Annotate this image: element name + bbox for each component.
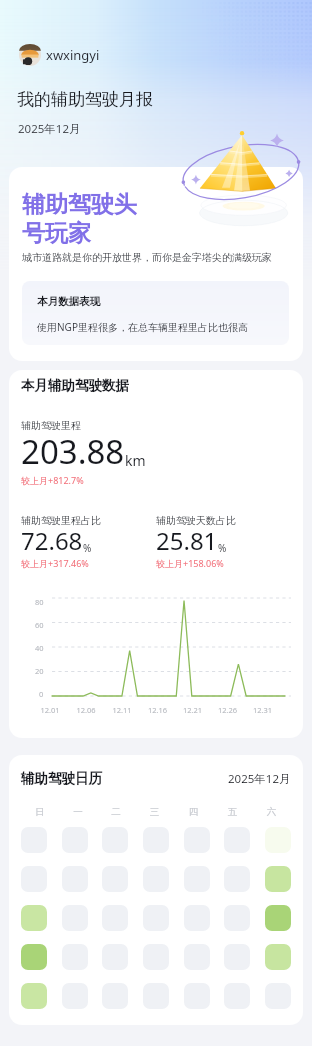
staticText: 本月辅助驾驶数据 — [21, 377, 129, 394]
button[interactable] — [143, 944, 169, 970]
staticText: 较上月+317.46% — [21, 557, 89, 569]
staticText: 辅助驾驶天数占比 — [156, 514, 236, 527]
staticText: 203.88 — [21, 429, 125, 474]
staticText: 12.31 — [245, 705, 280, 715]
staticText: 较上月+158.06% — [156, 557, 224, 569]
staticText: 0 — [39, 689, 44, 699]
staticText: % — [218, 541, 227, 555]
staticText: 二 — [97, 806, 135, 818]
button[interactable] — [184, 827, 210, 853]
button[interactable] — [62, 944, 88, 970]
button[interactable] — [224, 944, 250, 970]
staticText: 较上月+812.7% — [21, 474, 84, 486]
button[interactable] — [224, 983, 250, 1009]
button[interactable] — [265, 827, 291, 853]
button[interactable] — [62, 827, 88, 853]
button[interactable] — [143, 905, 169, 931]
button[interactable] — [102, 827, 128, 853]
staticText: 2025年12月 — [228, 771, 291, 787]
staticText: 60 — [35, 620, 44, 630]
button[interactable] — [224, 827, 250, 853]
staticText: 20 — [35, 666, 44, 676]
staticText: 本月数据表现 — [37, 295, 100, 308]
staticText: 辅助驾驶里程 — [21, 419, 81, 432]
button[interactable] — [184, 905, 210, 931]
button[interactable] — [184, 983, 210, 1009]
button[interactable] — [102, 944, 128, 970]
button[interactable] — [265, 866, 291, 892]
staticText: 40 — [35, 643, 44, 653]
staticText: km — [125, 451, 146, 470]
staticText: 三 — [135, 806, 174, 818]
button[interactable] — [62, 866, 88, 892]
button[interactable] — [102, 866, 128, 892]
button[interactable] — [224, 866, 250, 892]
button[interactable] — [224, 905, 250, 931]
staticText: 72.68 — [21, 524, 83, 557]
staticText: 12.06 — [68, 705, 104, 715]
button[interactable] — [21, 905, 47, 931]
button[interactable] — [21, 866, 47, 892]
staticText: 辅助驾驶头 号玩家 — [22, 190, 137, 247]
staticText: 12.21 — [175, 705, 210, 715]
staticText: 辅助驾驶日历 — [21, 770, 102, 787]
staticText: 25.81 — [156, 524, 218, 557]
staticText: % — [83, 541, 92, 555]
staticText: xwxingyi — [46, 46, 100, 64]
staticText: 12.11 — [104, 705, 140, 715]
button[interactable] — [62, 905, 88, 931]
staticText: 12.16 — [140, 705, 175, 715]
button[interactable] — [21, 944, 47, 970]
staticText: 四 — [174, 806, 213, 818]
button[interactable] — [143, 983, 169, 1009]
staticText: 一 — [59, 806, 97, 818]
staticText: 我的辅助驾驶月报 — [17, 89, 153, 110]
staticText: 2025年12月 — [18, 121, 81, 137]
staticText: 使用NGP里程很多，在总车辆里程里占比也很高 — [37, 320, 248, 334]
staticText: 12.26 — [210, 705, 245, 715]
button[interactable] — [21, 983, 47, 1009]
button[interactable] — [102, 983, 128, 1009]
button[interactable] — [184, 866, 210, 892]
button[interactable] — [143, 866, 169, 892]
staticText: 城市道路就是你的开放世界，而你是金字塔尖的满级玩家 — [22, 251, 272, 264]
button[interactable] — [21, 827, 47, 853]
button[interactable]: xwxingyi — [0, 44, 110, 66]
button[interactable] — [102, 905, 128, 931]
staticText: 辅助驾驶里程占比 — [21, 514, 101, 527]
button[interactable] — [265, 944, 291, 970]
staticText: 12.01 — [32, 705, 68, 715]
button[interactable] — [143, 827, 169, 853]
button[interactable] — [265, 983, 291, 1009]
staticText: 五 — [213, 806, 252, 818]
button[interactable] — [184, 944, 210, 970]
button[interactable] — [265, 905, 291, 931]
staticText: 日 — [21, 806, 59, 818]
staticText: 80 — [35, 597, 44, 607]
button[interactable] — [62, 983, 88, 1009]
staticText: 六 — [252, 806, 291, 818]
